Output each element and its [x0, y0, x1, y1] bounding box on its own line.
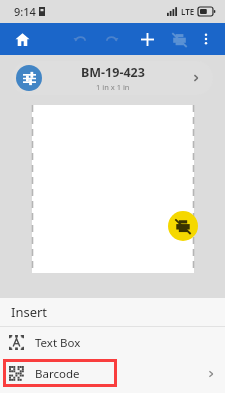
staticText: Text Box [35, 335, 81, 351]
button[interactable]: Home [8, 25, 36, 53]
staticText: BM-19-423 [81, 64, 145, 81]
button[interactable]: BM-19-423 [12, 61, 213, 95]
button[interactable]: Undo [67, 26, 93, 52]
button[interactable]: Print disabled [165, 25, 193, 53]
staticText: Insert [11, 303, 48, 321]
button[interactable]: Barcode [0, 358, 225, 389]
button[interactable]: Add [133, 25, 161, 53]
button[interactable]: Redo [99, 26, 125, 52]
staticText: Barcode [35, 366, 80, 382]
staticText: LTE [181, 6, 195, 17]
button[interactable]: Text Box [0, 327, 225, 358]
button[interactable]: Print [168, 211, 198, 241]
staticText: 9:14 [14, 4, 36, 19]
button[interactable]: More options [193, 26, 219, 52]
staticText: 1 in x 1 in [96, 82, 130, 92]
